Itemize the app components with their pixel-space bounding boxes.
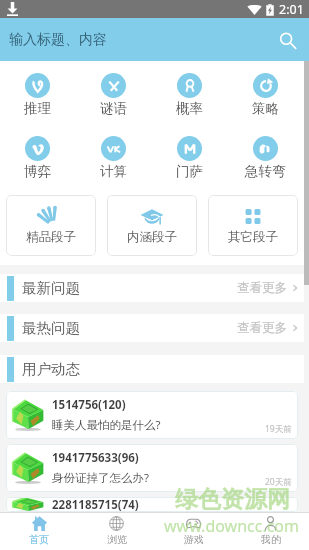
staticText: 输入标题、内容 [9, 31, 107, 49]
button[interactable]: 内涵段子 [107, 195, 197, 256]
staticText: 查看更多 [237, 280, 287, 296]
staticText: 查看更多 [237, 320, 287, 336]
button[interactable]: 策略 [227, 73, 303, 117]
button[interactable]: 其它段子 [208, 195, 298, 256]
staticText: 策略 [252, 100, 279, 117]
button[interactable]: 浏览 [78, 512, 155, 550]
button[interactable]: 2281185715(74) [6, 497, 298, 512]
staticText: 浏览 [107, 533, 127, 546]
button[interactable]: 谜语 [75, 73, 151, 117]
staticText: www.downcc.com [164, 515, 300, 537]
button[interactable]: 最热问题 [0, 314, 304, 342]
staticText: 最新问题 [22, 279, 80, 297]
button[interactable]: 首页 [0, 512, 78, 550]
button[interactable]: 用户动态 [0, 355, 304, 383]
staticText: 推理 [24, 100, 51, 117]
button[interactable]: 推理 [0, 73, 75, 117]
button[interactable]: 门萨 [151, 136, 227, 180]
button[interactable]: 急转弯 [227, 136, 303, 180]
staticText: 最热问题 [22, 319, 80, 337]
staticText: 精品段子 [26, 229, 76, 245]
staticText: 我的 [261, 533, 281, 546]
staticText: 20天前 [265, 476, 292, 488]
staticText: 用户动态 [22, 360, 80, 378]
staticText: 19天前 [265, 423, 292, 435]
button[interactable]: 最新问题 [0, 274, 304, 302]
staticText: 内涵段子 [127, 229, 177, 245]
staticText: 门萨 [176, 163, 203, 180]
staticText: 急转弯 [245, 163, 286, 180]
button[interactable]: 博弈 [0, 136, 75, 180]
button[interactable]: 精品段子 [6, 195, 96, 256]
staticText: 2:01 [279, 1, 304, 18]
staticText: 2281185715(74) [52, 497, 139, 512]
button[interactable]: 计算 [75, 136, 151, 180]
staticText: 谜语 [100, 100, 127, 117]
button[interactable]: 概率 [151, 73, 227, 117]
staticText: 睡美人最怕的是什么? [52, 417, 161, 433]
staticText: 博弈 [24, 163, 51, 180]
staticText: 其它段子 [228, 229, 278, 245]
staticText: 1514756(120) [52, 397, 126, 413]
button[interactable]: 1941775633(96) [6, 444, 298, 492]
staticText: 绿色资源网 [175, 485, 290, 514]
button[interactable]: 输入标题、内容 [0, 18, 309, 61]
staticText: 概率 [176, 100, 203, 117]
button[interactable]: 1514756(120) [6, 391, 298, 439]
staticText: 1941775633(96) [52, 450, 139, 466]
button[interactable]: Search [276, 29, 298, 51]
button[interactable]: 游戏 [155, 512, 232, 550]
staticText: 游戏 [184, 533, 204, 546]
staticText: 计算 [100, 163, 127, 180]
staticText: 身份证掉了怎么办? [52, 470, 149, 486]
button[interactable]: 我的 [232, 512, 309, 550]
staticText: 首页 [29, 533, 49, 546]
